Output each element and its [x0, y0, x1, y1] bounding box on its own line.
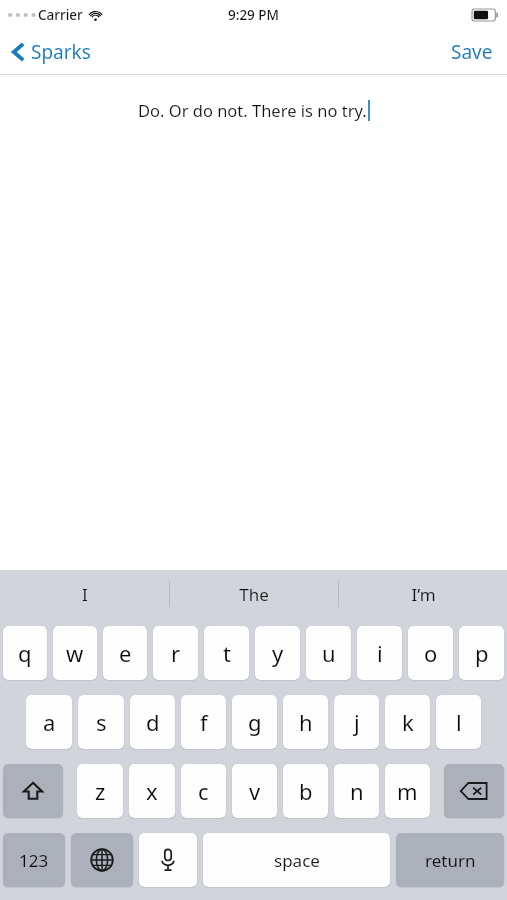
- staticText: h: [299, 707, 313, 737]
- staticText: z: [95, 776, 106, 806]
- button[interactable]: n: [334, 764, 379, 818]
- button[interactable]: Change keyboard language: [71, 833, 133, 887]
- staticText: a: [43, 707, 56, 737]
- staticText: k: [402, 707, 414, 737]
- staticText: l: [456, 707, 462, 737]
- button[interactable]: j: [334, 695, 379, 749]
- button[interactable]: t: [204, 626, 249, 680]
- staticText: 9:29 PM: [228, 6, 279, 24]
- staticText: j: [354, 707, 360, 737]
- staticText: w: [66, 638, 84, 668]
- staticText: b: [299, 776, 313, 806]
- staticText: g: [248, 707, 262, 737]
- staticText: I’m: [411, 583, 436, 606]
- staticText: x: [146, 776, 158, 806]
- button[interactable]: d: [130, 695, 175, 749]
- staticText: t: [223, 638, 231, 668]
- staticText: I: [82, 583, 88, 606]
- button[interactable]: space: [203, 833, 390, 887]
- staticText: m: [397, 776, 418, 806]
- button[interactable]: u: [306, 626, 351, 680]
- staticText: Sparks: [31, 39, 91, 65]
- button[interactable]: i: [357, 626, 402, 680]
- button[interactable]: Save: [437, 31, 507, 73]
- staticText: Save: [451, 39, 493, 65]
- button[interactable]: 123: [3, 833, 65, 887]
- button[interactable]: I: [0, 570, 169, 618]
- button[interactable]: The: [170, 570, 338, 618]
- staticText: v: [249, 776, 261, 806]
- staticText: r: [171, 638, 181, 668]
- button[interactable]: z: [77, 764, 123, 818]
- button[interactable]: m: [385, 764, 430, 818]
- button[interactable]: I’m: [339, 570, 507, 618]
- staticText: u: [322, 638, 336, 668]
- staticText: y: [272, 638, 284, 668]
- button[interactable]: y: [255, 626, 300, 680]
- button[interactable]: l: [436, 695, 481, 749]
- staticText: Carrier: [38, 6, 83, 24]
- button[interactable]: b: [283, 764, 328, 818]
- staticText: s: [96, 707, 107, 737]
- staticText: f: [200, 707, 208, 737]
- staticText: i: [377, 638, 383, 668]
- staticText: n: [350, 776, 364, 806]
- button[interactable]: f: [181, 695, 226, 749]
- staticText: 123: [19, 849, 49, 872]
- button[interactable]: c: [181, 764, 226, 818]
- button[interactable]: Shift: [3, 764, 63, 818]
- button[interactable]: Dictation: [139, 833, 197, 887]
- staticText: c: [198, 776, 209, 806]
- button[interactable]: p: [459, 626, 504, 680]
- staticText: return: [425, 849, 476, 872]
- staticText: e: [119, 638, 132, 668]
- button[interactable]: o: [408, 626, 453, 680]
- button[interactable]: q: [3, 626, 47, 680]
- button[interactable]: a: [26, 695, 72, 749]
- button[interactable]: w: [53, 626, 97, 680]
- staticText: q: [18, 638, 32, 668]
- button[interactable]: return: [396, 833, 504, 887]
- button[interactable]: v: [232, 764, 277, 818]
- button[interactable]: Sparks: [0, 33, 103, 71]
- button[interactable]: k: [385, 695, 430, 749]
- button[interactable]: h: [283, 695, 328, 749]
- staticText: p: [475, 638, 489, 668]
- staticText: The: [239, 583, 269, 606]
- staticText: o: [424, 638, 438, 668]
- staticText: space: [274, 849, 320, 872]
- staticText: d: [146, 707, 160, 737]
- button[interactable]: Backspace: [444, 764, 504, 818]
- button[interactable]: s: [78, 695, 124, 749]
- button[interactable]: x: [129, 764, 175, 818]
- button[interactable]: g: [232, 695, 277, 749]
- staticText: Do. Or do not. There is no try.: [138, 99, 367, 121]
- button[interactable]: r: [153, 626, 198, 680]
- button[interactable]: e: [103, 626, 147, 680]
